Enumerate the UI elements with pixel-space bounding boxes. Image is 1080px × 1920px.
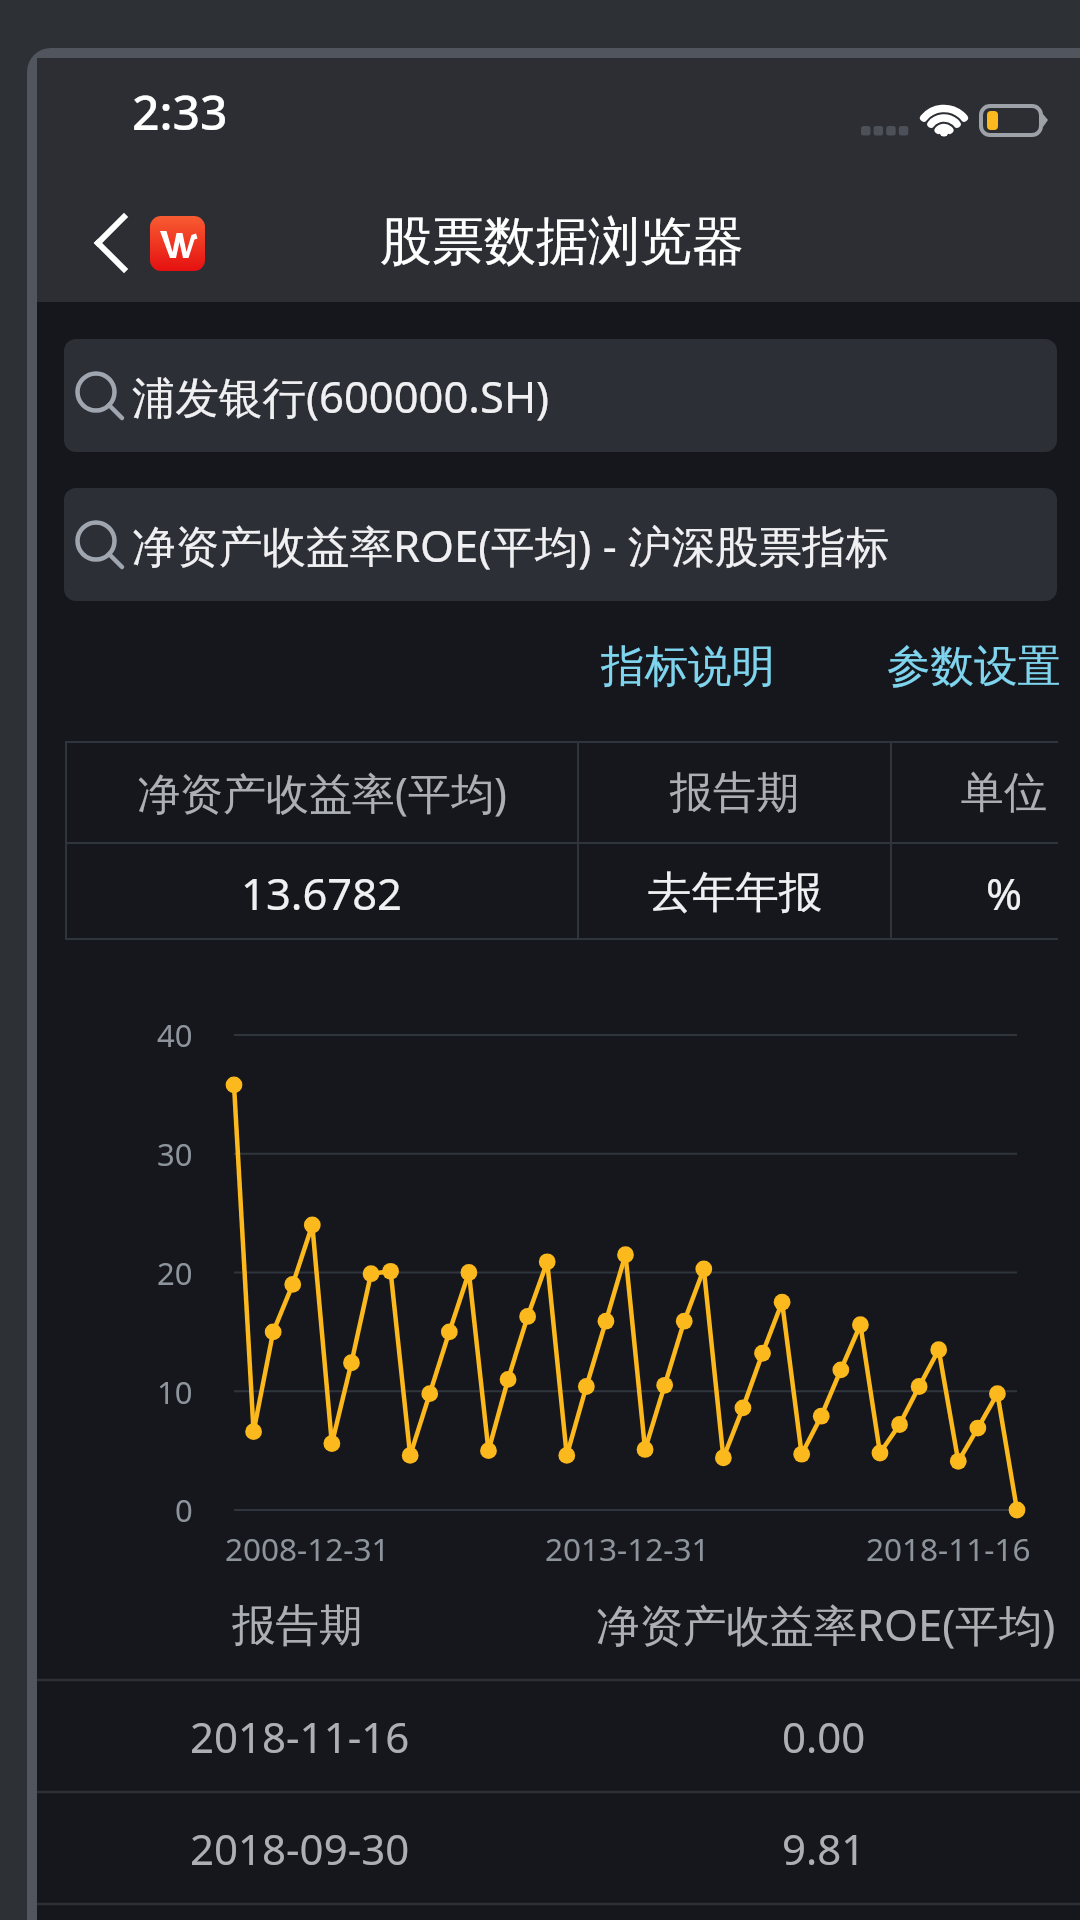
staticText: 股票数据浏览器 (380, 209, 744, 275)
button[interactable]: 参数设置 (871, 628, 1077, 704)
staticText: 10 (157, 1371, 193, 1413)
staticText: 20 (157, 1252, 193, 1294)
staticText: 9.81 (782, 1820, 866, 1877)
staticText: 净资产收益率ROE(平均) (596, 1594, 1056, 1653)
staticText: 40 (157, 1014, 193, 1056)
staticText: 2018-09-30 (190, 1820, 410, 1877)
staticText: 参数设置 (887, 639, 1061, 694)
staticText: 净资产收益率(平均) (137, 763, 507, 822)
button[interactable]: Indicator search (64, 488, 1057, 601)
staticText: 2008-12-31 (225, 1527, 390, 1570)
staticText: 单位 (961, 766, 1047, 820)
staticText: 报告期 (232, 1598, 363, 1653)
staticText: 2018-11-16 (190, 1708, 410, 1765)
staticText: % (986, 863, 1023, 922)
staticText: 2018-11-16 (866, 1527, 1031, 1570)
button[interactable]: Wind app (150, 216, 205, 271)
staticText: 2:33 (132, 79, 228, 144)
button[interactable]: Stock search (64, 339, 1057, 452)
staticText: 指标说明 (601, 639, 775, 694)
staticText: 报告期 (670, 766, 799, 820)
button[interactable]: Back (67, 204, 155, 282)
staticText: 浦发银行(600000.SH) (132, 366, 550, 425)
staticText: 净资产收益率ROE(平均) - 沪深股票指标 (132, 515, 889, 574)
staticText: 去年年报 (648, 865, 822, 920)
button[interactable]: 2018-11-16 (37, 1680, 1080, 1792)
button[interactable]: 2018-09-30 (37, 1792, 1080, 1904)
staticText: 0.00 (782, 1708, 866, 1765)
button[interactable]: 指标说明 (585, 628, 791, 704)
staticText: 2013-12-31 (545, 1527, 710, 1570)
staticText: 30 (157, 1133, 193, 1175)
staticText: 0 (175, 1489, 193, 1531)
staticText: 13.6782 (241, 863, 402, 922)
